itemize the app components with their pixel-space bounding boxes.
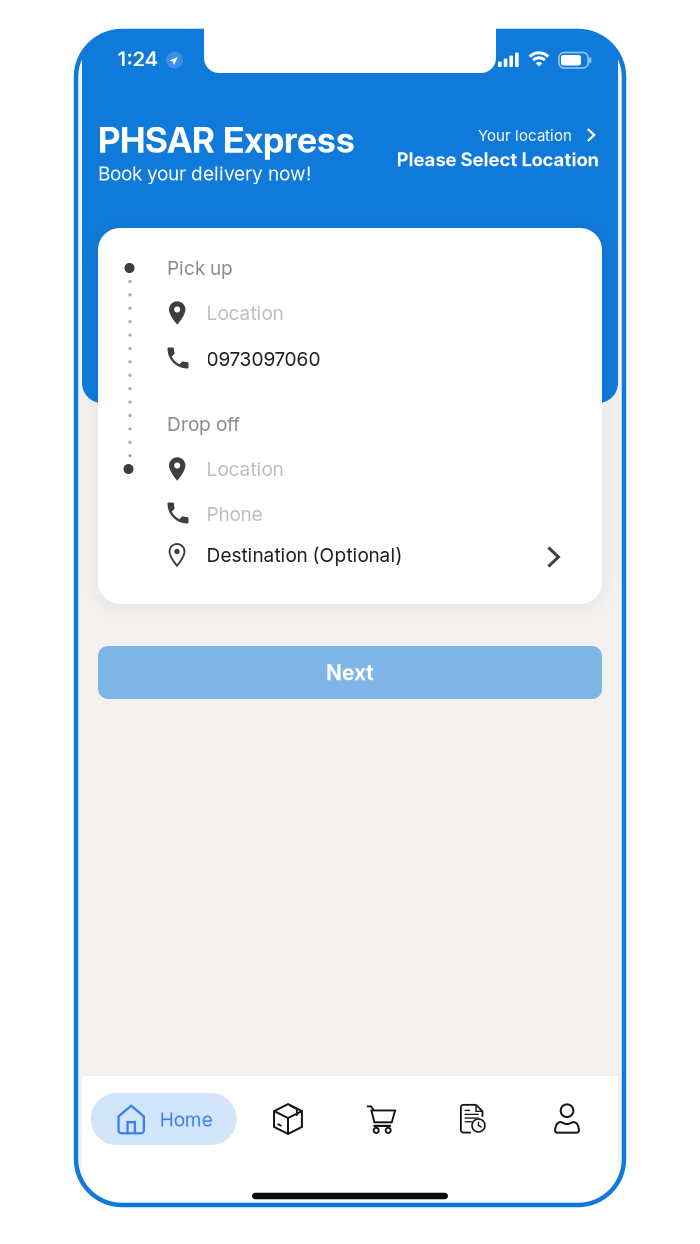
staticText: Your location xyxy=(478,126,572,144)
staticText: 0973097060 xyxy=(206,347,320,370)
button[interactable]: Your location xyxy=(82,37,627,1209)
button[interactable]: 0973097060 xyxy=(98,336,602,381)
staticText: Book your delivery now! xyxy=(98,162,311,185)
staticText: Home xyxy=(160,1108,213,1131)
staticText: Destination (Optional) xyxy=(206,543,402,566)
staticText: Please Select Location xyxy=(396,148,599,171)
button[interactable] xyxy=(359,1097,403,1141)
staticText: Next xyxy=(326,660,374,685)
staticText: Location xyxy=(206,457,283,480)
staticText: 1:24 xyxy=(117,47,158,71)
staticText: PHSAR Express xyxy=(98,119,355,161)
staticText: Drop off xyxy=(167,412,240,435)
button[interactable] xyxy=(266,1097,310,1141)
button[interactable]: Next xyxy=(98,646,602,699)
staticText: Pick up xyxy=(167,256,233,279)
button[interactable]: Destination (Optional) xyxy=(98,532,602,578)
staticText: Phone xyxy=(206,502,262,525)
button[interactable] xyxy=(450,1097,494,1141)
staticText: Location xyxy=(206,301,283,324)
button[interactable]: Home xyxy=(91,1093,237,1145)
button[interactable]: Phone xyxy=(98,491,602,536)
button[interactable] xyxy=(545,1097,589,1141)
button[interactable]: Location xyxy=(98,290,602,335)
button[interactable]: Location xyxy=(98,446,602,491)
